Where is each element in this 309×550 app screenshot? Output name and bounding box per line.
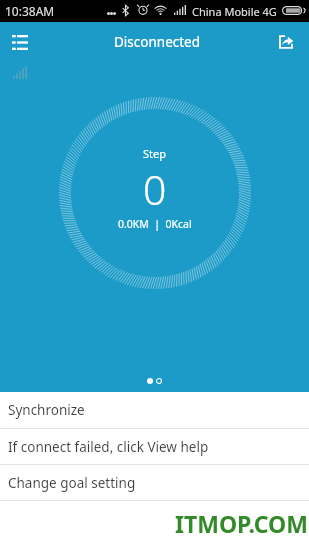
staticText: Synchronize [8,401,85,419]
button[interactable]: Synchronize [0,392,309,428]
staticText: If connect failed, click View help [8,438,209,456]
button[interactable]: Change goal setting [0,465,309,500]
staticText: Disconnected [114,33,201,51]
button[interactable]: Share [270,26,302,58]
button[interactable]: Menu [4,26,36,58]
staticText: ITMOP.COM [175,508,308,539]
staticText: 10:38AM [5,3,55,19]
button[interactable]: If connect failed, click View help [0,429,309,464]
staticText: 0 [143,161,167,217]
staticText: Change goal setting [8,474,136,492]
staticText: China Mobile 4G [192,4,277,19]
staticText: 0.0KM | 0Kcal [118,217,192,231]
staticText: Step [143,146,166,161]
button[interactable]: Signal strength [6,58,34,86]
